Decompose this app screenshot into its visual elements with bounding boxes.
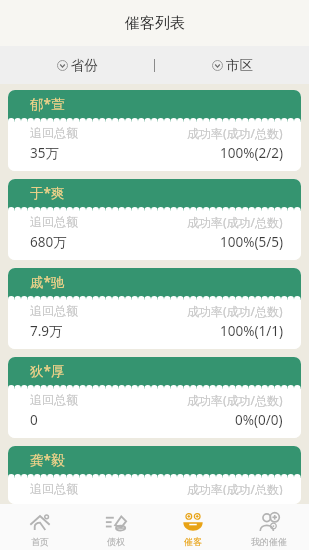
staticText: 催客列表	[125, 14, 185, 33]
button[interactable]: 省份	[0, 46, 154, 84]
staticText: 追回总额	[30, 392, 78, 407]
staticText: 追回总额	[30, 214, 78, 229]
staticText: 省份	[71, 57, 98, 74]
staticText: 狄*厚	[30, 362, 65, 380]
staticText: 追回总额	[30, 303, 78, 318]
staticText: 催客	[184, 536, 202, 547]
staticText: 35万	[30, 144, 59, 162]
staticText: 成功率(成功/总数)	[187, 214, 283, 230]
button[interactable]: 我的催催	[233, 504, 305, 550]
staticText: 戚*驰	[30, 273, 65, 291]
staticText: 0%(0/0)	[235, 411, 283, 429]
button[interactable]: 戚*驰	[8, 268, 301, 349]
staticText: 0	[30, 411, 38, 429]
staticText: 成功率(成功/总数)	[187, 392, 283, 408]
staticText: 100%(1/1)	[220, 322, 283, 340]
button[interactable]: 市区	[155, 46, 309, 84]
staticText: 郁*萱	[30, 95, 65, 113]
staticText: 100%(2/2)	[220, 144, 283, 162]
staticText: 我的催催	[251, 536, 287, 547]
staticText: 成功率(成功/总数)	[187, 125, 283, 141]
staticText: 追回总额	[30, 125, 78, 140]
staticText: 龚*毅	[30, 451, 65, 469]
staticText: 680万	[30, 233, 67, 251]
staticText: 成功率(成功/总数)	[187, 303, 283, 319]
staticText: 成功率(成功/总数)	[187, 481, 283, 495]
button[interactable]: 首页	[4, 504, 76, 550]
button[interactable]: 狄*厚	[8, 357, 301, 438]
staticText: 7.9万	[30, 322, 63, 340]
button[interactable]: 龚*毅	[8, 446, 301, 504]
button[interactable]: 债权	[80, 504, 152, 550]
button[interactable]: 催客	[157, 504, 229, 550]
staticText: 于*爽	[30, 184, 65, 202]
staticText: 债权	[107, 536, 125, 547]
staticText: 市区	[226, 57, 253, 74]
staticText: 首页	[31, 536, 49, 547]
staticText: 追回总额	[30, 481, 78, 495]
button[interactable]: 郁*萱	[8, 90, 301, 171]
button[interactable]: 于*爽	[8, 179, 301, 260]
staticText: 100%(5/5)	[220, 233, 283, 251]
